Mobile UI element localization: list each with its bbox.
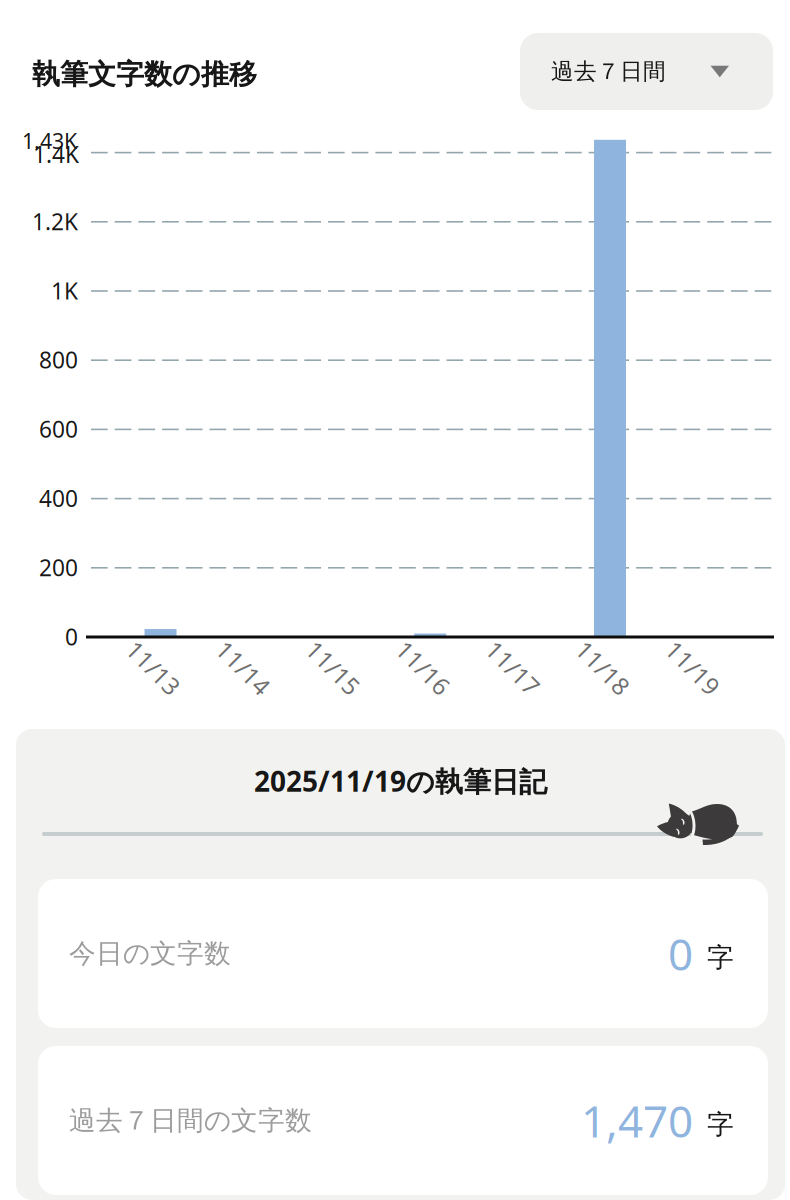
- staticText: 11/14: [211, 652, 276, 684]
- staticText: 800: [39, 345, 78, 375]
- staticText: 400: [39, 483, 78, 513]
- staticText: 11/18: [570, 652, 635, 684]
- staticText: 1,470: [581, 1091, 693, 1150]
- staticText: 今日の文字数: [69, 937, 231, 970]
- staticText: 1.4K: [33, 139, 79, 169]
- staticText: 11/15: [301, 652, 366, 684]
- staticText: 11/16: [391, 652, 456, 684]
- button[interactable]: 今日の文字数: [38, 879, 768, 1028]
- staticText: 過去７日間: [551, 58, 666, 85]
- staticText: 1.43K: [22, 126, 77, 155]
- staticText: 過去７日間の文字数: [69, 1104, 312, 1137]
- staticText: 200: [39, 552, 78, 582]
- staticText: 1.2K: [32, 206, 78, 236]
- staticText: 600: [39, 414, 78, 444]
- staticText: 字: [707, 1108, 734, 1141]
- staticText: 11/17: [481, 652, 546, 684]
- button[interactable]: 過去７日間: [520, 33, 773, 110]
- staticText: 2025/11/19の執筆日記: [254, 762, 547, 800]
- staticText: 字: [707, 941, 734, 974]
- staticText: 0: [65, 621, 78, 652]
- button[interactable]: 過去７日間の文字数: [38, 1046, 768, 1195]
- staticText: 0: [668, 924, 693, 983]
- staticText: 1K: [51, 275, 78, 306]
- staticText: 11/13: [121, 652, 186, 684]
- staticText: 11/19: [660, 652, 725, 684]
- staticText: 執筆文字数の推移: [32, 57, 257, 92]
